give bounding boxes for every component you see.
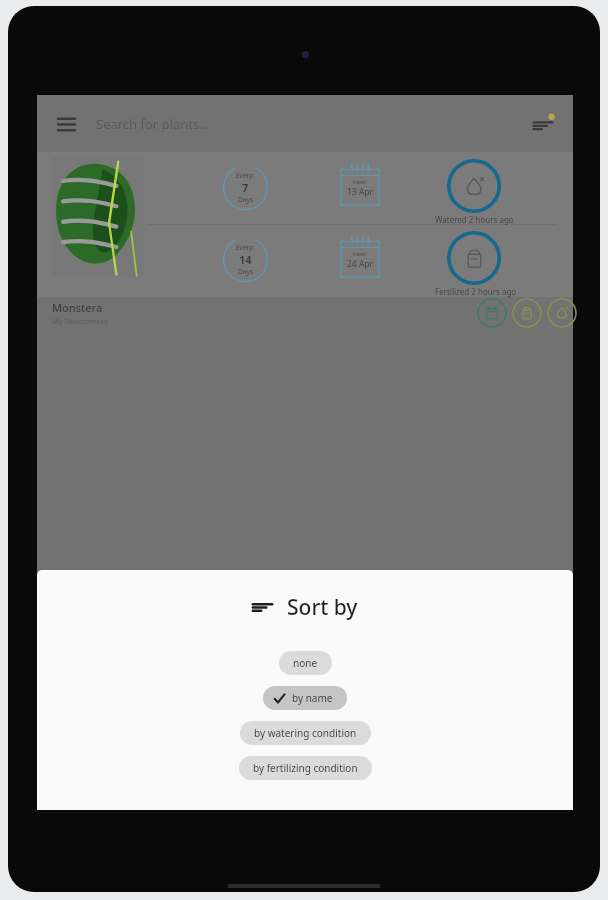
button[interactable]: Fertilize xyxy=(512,298,542,328)
staticText: Watered 2 hours ago xyxy=(435,214,514,225)
button[interactable]: Calendar xyxy=(477,298,507,328)
staticText: Days xyxy=(238,267,253,276)
staticText: next: xyxy=(353,250,367,258)
button[interactable]: Sort xyxy=(526,107,560,141)
staticText: Every: xyxy=(236,171,255,180)
staticText: Days xyxy=(238,195,253,204)
staticText: 24 Apr xyxy=(347,258,374,270)
staticText: Fertilized 2 hours ago xyxy=(435,286,517,297)
button[interactable]: Open navigation menu xyxy=(50,108,82,140)
button[interactable]: Water xyxy=(547,298,577,328)
button[interactable]: Water now xyxy=(447,159,501,213)
staticText: 7 xyxy=(242,180,249,195)
button[interactable]: by name xyxy=(263,686,347,710)
button[interactable] xyxy=(37,152,573,297)
staticText: none xyxy=(293,656,318,670)
staticText: by watering condition xyxy=(254,726,357,740)
staticText: next: xyxy=(353,178,367,186)
staticText: 14 xyxy=(239,252,252,267)
staticText: Monstera xyxy=(52,300,103,315)
button[interactable]: by fertilizing condition xyxy=(239,756,372,780)
staticText: Sort by xyxy=(287,593,358,622)
staticText: by name xyxy=(292,691,333,705)
staticText: Every: xyxy=(236,243,255,252)
staticText: 13 Apr xyxy=(347,186,374,198)
button[interactable]: none xyxy=(279,651,332,675)
staticText: Search for plants... xyxy=(96,115,210,133)
staticText: by fertilizing condition xyxy=(253,761,358,775)
button[interactable]: Fertilize now xyxy=(447,231,501,285)
staticText: My Swisscheese xyxy=(52,316,109,326)
button[interactable]: by watering condition xyxy=(240,721,371,745)
